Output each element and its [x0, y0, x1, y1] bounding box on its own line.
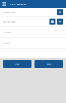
staticText: Remark — [3, 41, 10, 45]
staticText: SAVE — [15, 63, 19, 65]
button[interactable]: BACK — [34, 60, 63, 68]
staticText: Add Expense — [10, 2, 26, 6]
button[interactable]: Pick date — [49, 19, 55, 25]
button[interactable]: SAVE — [3, 60, 31, 68]
staticText: BACK — [47, 63, 51, 65]
staticText: 06 Apr 2019 — [3, 20, 15, 23]
button[interactable]: Choose expense type — [57, 9, 63, 15]
staticText: Amount — [3, 30, 11, 34]
button[interactable]: Pick time — [57, 19, 63, 25]
staticText: Expense Type — [3, 10, 15, 14]
button[interactable]: Menu — [1, 1, 7, 7]
